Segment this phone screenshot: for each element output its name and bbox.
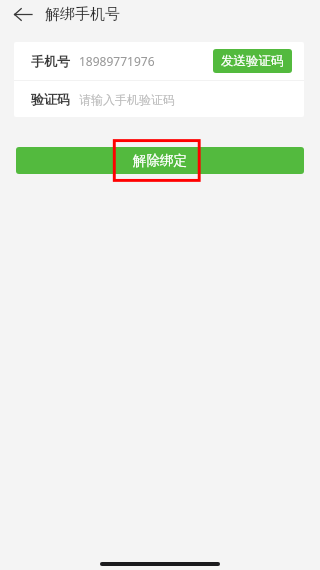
staticText: 请输入手机验证码: [79, 92, 175, 107]
staticText: 手机号: [31, 53, 70, 69]
staticText: 解除绑定: [133, 152, 187, 169]
staticText: 18989771976: [79, 53, 155, 69]
staticText: 解绑手机号: [45, 5, 120, 24]
button[interactable]: 解除绑定: [16, 147, 304, 174]
button[interactable]: 发送验证码: [213, 49, 292, 73]
staticText: 验证码: [31, 91, 70, 107]
staticText: 发送验证码: [221, 53, 284, 69]
button[interactable]: Back: [9, 0, 37, 28]
